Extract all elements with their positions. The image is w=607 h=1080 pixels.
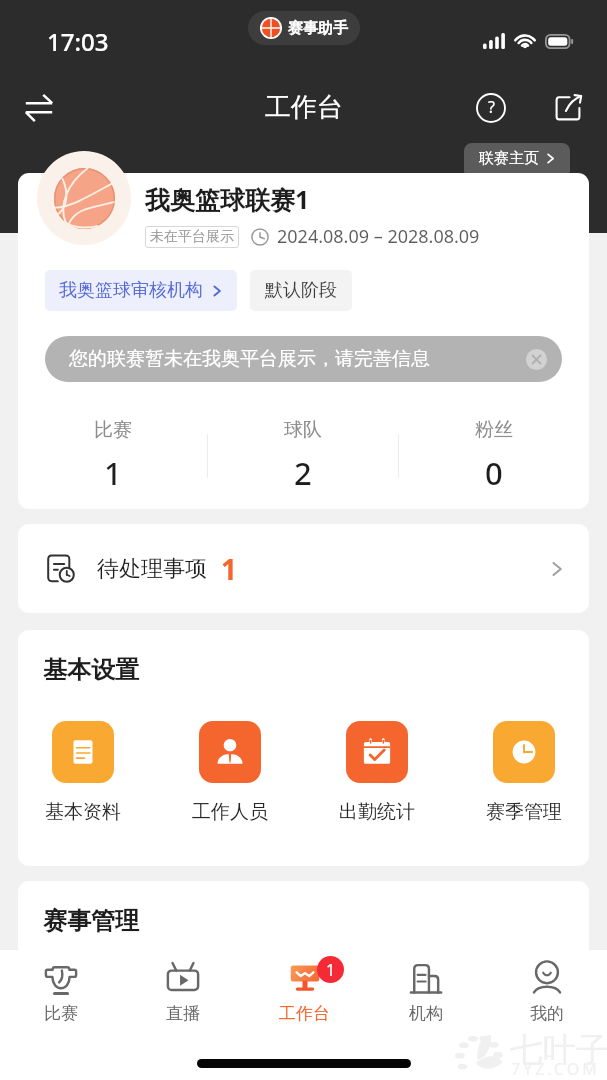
staticText: 赛事助手	[288, 19, 348, 38]
staticText: 出勤统计	[339, 800, 415, 824]
staticText: 工作人员	[192, 800, 268, 824]
staticText: ?	[488, 96, 495, 118]
staticText: 我的	[530, 1003, 564, 1024]
staticText: 2	[294, 452, 312, 494]
staticText: 1	[221, 550, 238, 588]
staticText: 联赛主页	[479, 149, 539, 168]
button[interactable]: 比赛	[0, 950, 122, 1032]
button[interactable]: Share	[543, 83, 593, 133]
staticText: 基本资料	[45, 800, 121, 824]
button[interactable]: 机构	[365, 950, 486, 1032]
staticText: 0	[485, 452, 503, 494]
button[interactable]: 比赛	[18, 418, 207, 494]
staticText: 您的联赛暂未在我奥平台展示，请完善信息	[69, 347, 526, 371]
button[interactable]: 您的联赛暂未在我奥平台展示，请完善信息	[45, 336, 562, 382]
staticText: 直播	[166, 1003, 200, 1024]
staticText: 赛季管理	[486, 800, 562, 824]
button[interactable]: 直播	[122, 950, 244, 1032]
button[interactable]: 我的	[486, 950, 607, 1032]
staticText: 粉丝	[475, 418, 513, 442]
button[interactable]: Switch	[14, 83, 64, 133]
button[interactable]: Help	[466, 83, 516, 133]
staticText: 七叶子	[510, 1029, 607, 1071]
staticText: 17:03	[47, 25, 109, 58]
staticText: 我奥篮球审核机构	[59, 279, 203, 302]
staticText: 未在平台展示	[150, 228, 234, 246]
button[interactable]: 待处理事项	[18, 524, 589, 613]
staticText: 7YZ.COM	[511, 1058, 600, 1080]
button[interactable]: 粉丝	[399, 418, 589, 494]
button[interactable]: 我奥篮球审核机构	[45, 270, 237, 311]
staticText: 待处理事项	[97, 555, 207, 583]
button[interactable]: 1	[244, 950, 365, 1032]
button[interactable]: 出勤统计	[346, 721, 408, 824]
staticText: 比赛	[44, 1003, 78, 1024]
staticText: 球队	[284, 418, 322, 442]
staticText: 基本设置	[43, 655, 139, 685]
staticText: 机构	[409, 1003, 443, 1024]
button[interactable]: 默认阶段	[250, 270, 352, 311]
button[interactable]: 联赛主页	[464, 143, 570, 179]
button[interactable]: 赛季管理	[493, 721, 555, 824]
staticText: 1	[326, 959, 336, 981]
staticText: 赛事管理	[43, 906, 139, 936]
staticText: 比赛	[94, 418, 132, 442]
button[interactable]: 基本资料	[52, 721, 114, 824]
staticText: 我奥篮球联赛1	[145, 182, 310, 216]
staticText: 工作台	[279, 1003, 330, 1024]
staticText: 默认阶段	[265, 279, 337, 302]
button[interactable]: 工作人员	[199, 721, 261, 824]
button[interactable]: 球队	[208, 418, 398, 494]
staticText: 1	[104, 452, 122, 494]
staticText: 2024.08.09 – 2028.08.09	[277, 224, 480, 249]
staticText: 工作台	[265, 91, 343, 124]
